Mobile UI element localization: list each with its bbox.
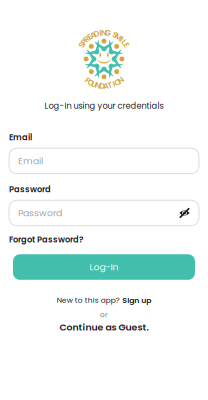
staticText: E xyxy=(88,31,92,42)
staticText: or xyxy=(100,310,108,320)
staticText: Sign up xyxy=(122,295,151,306)
staticText: Forgot Password? xyxy=(9,234,83,245)
staticText xyxy=(111,28,113,39)
staticText: N xyxy=(101,27,107,38)
staticText: E xyxy=(124,39,128,51)
staticText: R xyxy=(84,34,89,45)
staticText: T xyxy=(108,80,113,91)
staticText: N xyxy=(118,74,124,86)
staticText: N xyxy=(95,80,101,91)
staticText: S xyxy=(79,39,84,51)
staticText: Password xyxy=(9,184,51,195)
staticText: U xyxy=(91,79,97,90)
staticText: L xyxy=(122,36,126,48)
staticText: Continue as Guest. xyxy=(59,321,148,334)
staticText: O xyxy=(114,77,120,88)
staticText: Email xyxy=(9,132,32,143)
staticText: D xyxy=(93,28,99,39)
button[interactable]: Log-In xyxy=(13,254,195,280)
button[interactable]: Sign up xyxy=(122,295,151,306)
staticText: I xyxy=(99,27,101,38)
staticText: Email xyxy=(18,154,43,167)
staticText: G xyxy=(105,27,111,38)
staticText: M xyxy=(115,31,122,42)
staticText: I xyxy=(113,78,115,90)
staticText: Log-In using your credentials xyxy=(44,100,163,112)
staticText: O xyxy=(88,77,94,88)
staticText: Log-In xyxy=(89,260,118,274)
staticText: S xyxy=(113,29,118,41)
staticText: P xyxy=(81,36,86,47)
staticText: F xyxy=(85,75,89,86)
staticText: D xyxy=(99,80,105,91)
staticText: A xyxy=(103,80,109,91)
button[interactable]: Continue as Guest. xyxy=(59,321,148,334)
staticText: A xyxy=(90,29,96,41)
staticText: New to this app? xyxy=(57,295,120,305)
button[interactable]: Forgot Password? xyxy=(9,226,83,245)
staticText: I xyxy=(120,34,122,45)
staticText: Password xyxy=(18,206,62,219)
